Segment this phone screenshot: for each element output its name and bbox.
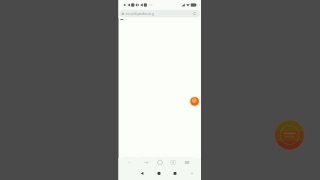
button[interactable]: Home — [153, 157, 166, 168]
button[interactable]: Recent apps — [167, 169, 182, 178]
button[interactable]: Tabs — [166, 157, 179, 168]
staticText: en.wikipedia.org — [125, 11, 153, 16]
button[interactable]: Address bar — [119, 10, 200, 17]
button[interactable]: Forward — [139, 157, 152, 168]
button[interactable]: Menu — [180, 157, 193, 168]
button[interactable]: Back — [134, 169, 149, 178]
button[interactable]: Home — [151, 169, 166, 178]
button[interactable]: Scroll to top — [189, 95, 201, 107]
